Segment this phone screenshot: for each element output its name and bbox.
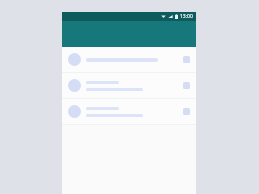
staticText: 13:00	[180, 13, 193, 20]
button[interactable]: More options	[62, 73, 196, 98]
button[interactable]: More options	[62, 47, 196, 72]
button[interactable]: More options	[62, 99, 196, 124]
button[interactable]: More options	[183, 56, 190, 63]
button[interactable]: More options	[183, 82, 190, 89]
button[interactable]: More options	[183, 108, 190, 115]
